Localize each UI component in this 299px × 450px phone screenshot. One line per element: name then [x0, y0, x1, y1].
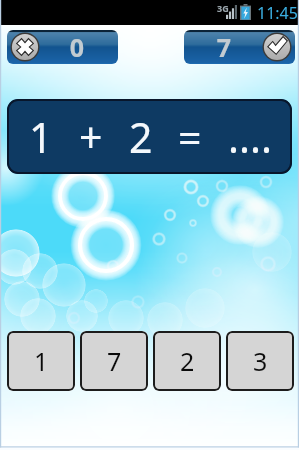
button[interactable]: Wrong answers	[7, 30, 118, 64]
staticText: 1	[34, 344, 49, 378]
staticText: =	[178, 109, 202, 165]
button[interactable]: Correct answers	[184, 30, 295, 64]
staticText: 0	[53, 30, 101, 64]
staticText: 3G	[217, 2, 229, 14]
button[interactable]: Question 1 + 2 = ?	[7, 99, 292, 174]
staticText: 2	[129, 109, 153, 165]
button[interactable]: 2	[153, 331, 221, 391]
staticText: 2	[180, 344, 195, 378]
staticText: ....	[228, 109, 272, 165]
button[interactable]: 3	[226, 331, 294, 391]
staticText: 7	[107, 344, 122, 378]
staticText: +	[79, 109, 103, 165]
staticText: 7	[200, 30, 248, 64]
button[interactable]: 7	[80, 331, 148, 391]
staticText: 11:45	[257, 2, 298, 24]
staticText: 1	[29, 109, 53, 165]
button[interactable]: 1	[7, 331, 75, 391]
staticText: 3	[253, 344, 268, 378]
